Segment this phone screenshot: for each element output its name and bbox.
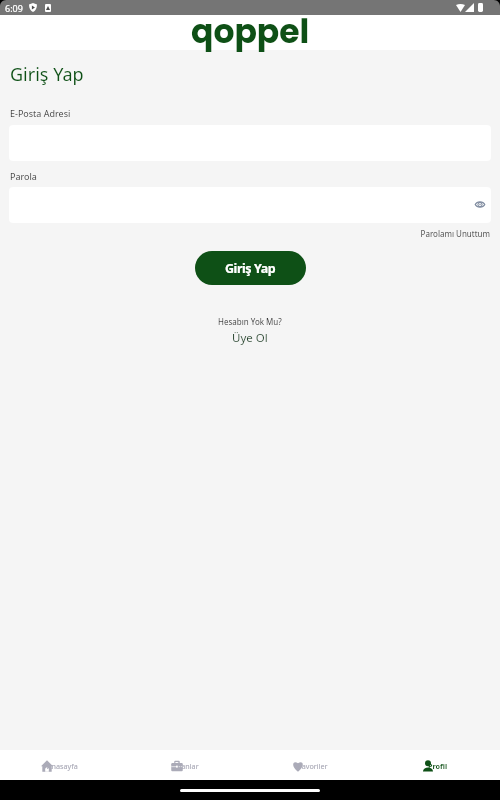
button[interactable]: Giriş Yap [195,251,306,285]
button[interactable]: Show password [475,199,485,209]
staticText: E-Posta Adresi [10,107,71,119]
staticText: Giriş Yap [225,260,276,277]
button[interactable]: Favoriler [250,750,375,780]
staticText: Hesabın Yok Mu? [218,316,282,327]
button[interactable]: İlanlar [125,750,250,780]
staticText: Parola [10,170,37,182]
button[interactable]: Profil [375,750,500,780]
staticText: Profil [428,761,448,771]
staticText: 6:09 [5,2,23,14]
staticText: Favoriler [298,761,328,771]
staticText: Giriş Yap [10,62,84,87]
button[interactable]: Parolamı Unuttum [0,228,490,239]
staticText: İlanlar [177,761,199,771]
button[interactable]: Anasayfa [0,750,125,780]
staticText: qoppel [191,8,310,54]
staticText: Anasayfa [47,761,78,771]
button[interactable]: Üye Ol [232,330,268,346]
button[interactable]: Show password [9,187,491,223]
